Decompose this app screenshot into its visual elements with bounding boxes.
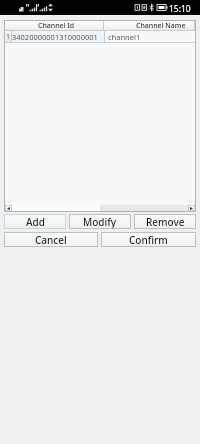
button[interactable]: Cancel (4, 232, 98, 247)
button[interactable]: Channel Id (5, 21, 104, 30)
button[interactable]: Scroll right (188, 205, 195, 211)
button[interactable]: Add (4, 214, 66, 229)
staticText: Remove (146, 215, 185, 229)
staticText: 15:10 (169, 3, 191, 15)
staticText: channel1 (108, 32, 141, 42)
staticText: Modify (83, 215, 117, 229)
staticText: 34020000001310000001 (12, 32, 98, 42)
staticText: Add (26, 215, 45, 229)
button[interactable]: channel1 (105, 31, 195, 42)
button[interactable]: Modify (69, 214, 131, 229)
staticText: Confirm (129, 233, 168, 247)
button[interactable]: 34020000001310000001 (12, 31, 104, 42)
button[interactable]: Remove (134, 214, 196, 229)
staticText: Channel Id (38, 21, 75, 30)
staticText: Channel Name (136, 21, 186, 30)
staticText: 1 (6, 32, 11, 42)
button[interactable]: Scroll left (5, 205, 12, 211)
button[interactable]: Confirm (101, 232, 196, 247)
staticText: Cancel (35, 233, 67, 247)
button[interactable]: Channel Name (104, 21, 195, 30)
